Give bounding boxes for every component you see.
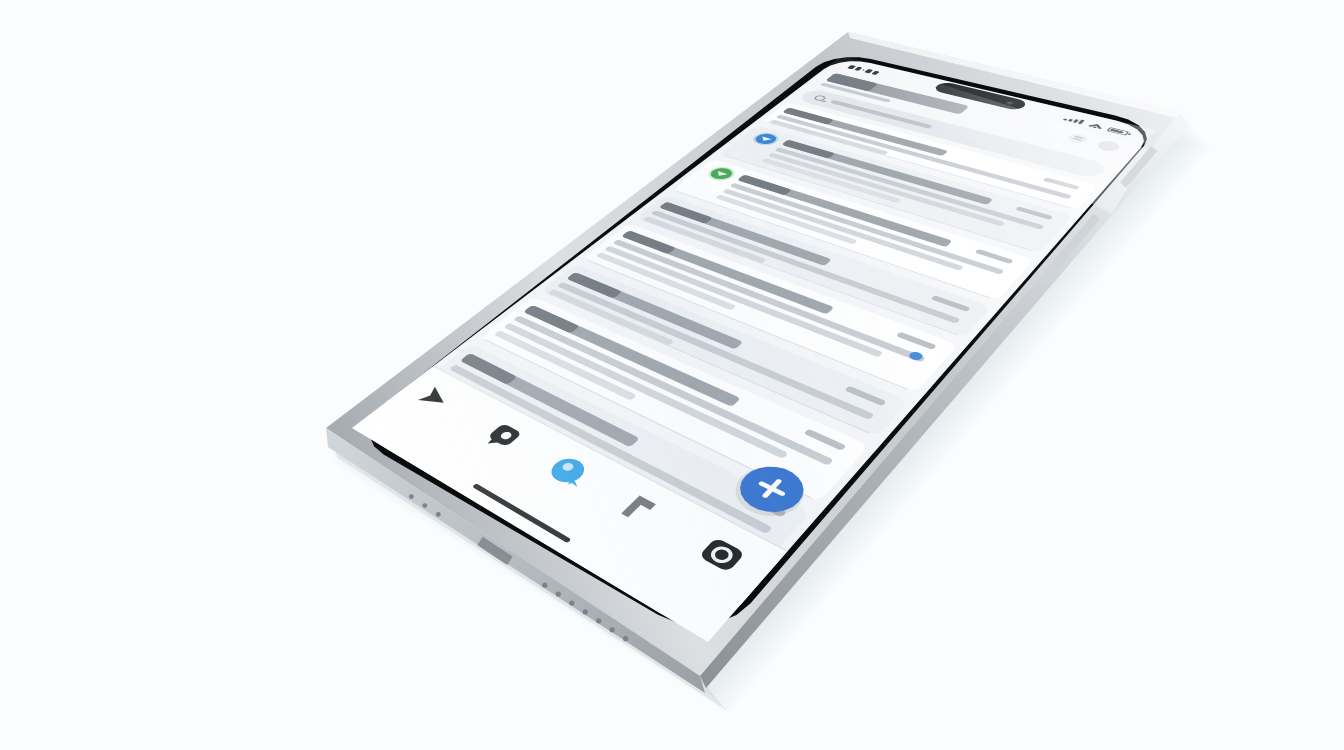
button[interactable]: Message from contact <box>560 155 890 215</box>
button[interactable]: Search mail <box>620 95 880 140</box>
button[interactable]: Message from contact <box>520 215 850 275</box>
button[interactable]: Messages <box>445 445 505 495</box>
button[interactable]: Bookmarks <box>580 520 640 570</box>
button[interactable]: Send <box>395 405 455 455</box>
button[interactable]: Camera <box>630 560 690 610</box>
button[interactable]: Mail <box>515 480 575 530</box>
